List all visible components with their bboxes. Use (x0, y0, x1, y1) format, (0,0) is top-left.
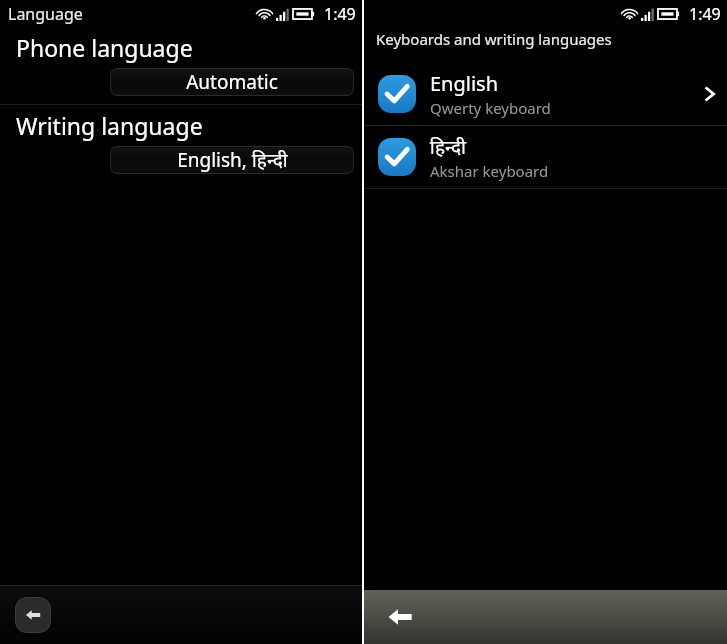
staticText: Writing language (16, 110, 203, 141)
staticText: Phone language (16, 32, 193, 63)
staticText: हिन्दी (430, 134, 466, 160)
staticText: Keyboards and writing languages (376, 29, 612, 49)
button[interactable]: Back (380, 597, 420, 637)
button[interactable]: Back (15, 597, 51, 633)
button[interactable]: Writing language (0, 105, 362, 182)
button[interactable]: हिन्दी (364, 126, 727, 188)
staticText: Automatic (186, 69, 278, 95)
staticText: English (430, 70, 499, 97)
button[interactable]: English (364, 63, 727, 125)
staticText: Language (8, 3, 83, 25)
staticText: Akshar keyboard (430, 161, 549, 181)
button[interactable]: Phone language (0, 27, 362, 104)
staticText: Qwerty keyboard (430, 98, 551, 118)
staticText: English, हिन्दी (177, 147, 288, 173)
staticText: 1:49 (689, 3, 721, 25)
staticText: 1:49 (324, 3, 356, 25)
